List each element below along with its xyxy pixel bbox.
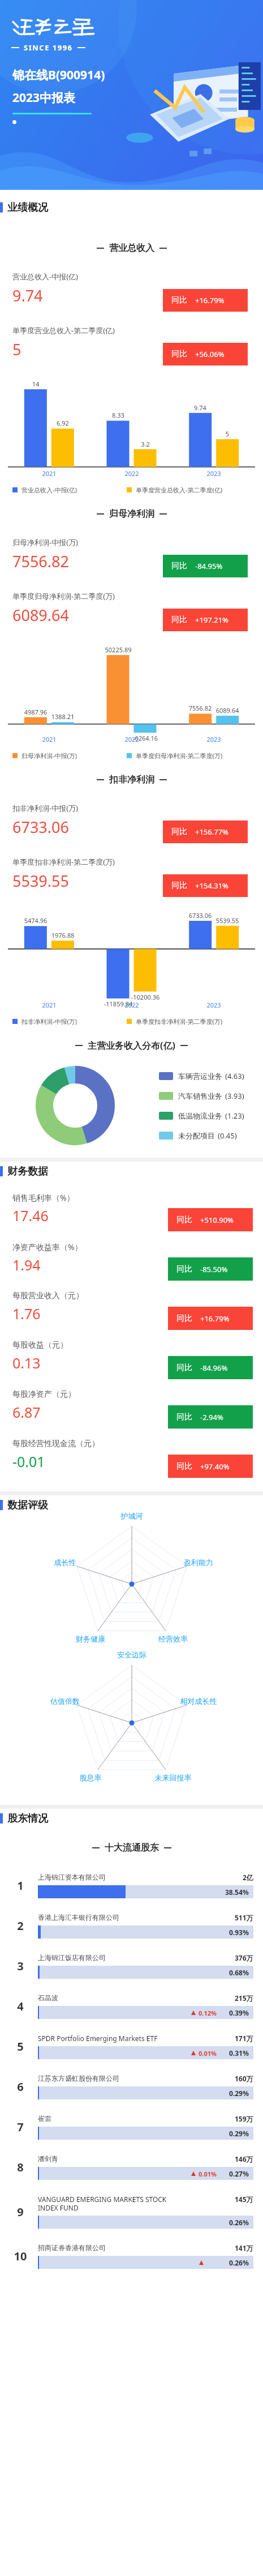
button[interactable]: 同比	[163, 343, 248, 365]
staticText: (0.45)	[218, 1130, 237, 1141]
staticText: 2021	[30, 735, 68, 743]
staticText: 6089.64	[208, 706, 247, 715]
staticText: 215万	[235, 1993, 253, 2003]
staticText: 锦在线B(900914)	[12, 67, 105, 83]
staticText: 主营业务收入分布(亿)	[88, 1039, 175, 1052]
staticText: 5539.55	[208, 916, 247, 925]
staticText: 单季度归母净利润-第二季度(万)	[12, 591, 115, 601]
staticText: 0.01%	[199, 2049, 217, 2058]
staticText: -85.50%	[200, 1264, 228, 1274]
staticText: 171万	[235, 2034, 253, 2043]
staticText: 2023	[195, 469, 233, 478]
staticText: 单季度营业总收入-第二季度(亿)	[12, 325, 115, 335]
staticText: 8	[5, 2160, 36, 2175]
staticText: -2.94%	[200, 1412, 223, 1422]
staticText: VANGUARD EMERGING MARKETS STOCK INDEX FU…	[38, 2195, 235, 2212]
staticText: 6733.06	[181, 911, 219, 920]
staticText: 营业总收入	[109, 243, 154, 254]
staticText: +510.90%	[200, 1215, 234, 1225]
staticText: +154.31%	[195, 881, 228, 891]
staticText: 0.39%	[229, 2008, 249, 2017]
button[interactable]: 6	[0, 2067, 263, 2107]
button[interactable]: 数据评级	[0, 1495, 263, 1515]
staticText: 10	[5, 2248, 36, 2264]
button[interactable]: 业绩概况	[0, 198, 263, 217]
staticText: 净资产收益率（%）	[12, 1242, 83, 1252]
button[interactable]: 同比	[163, 821, 248, 843]
button[interactable]: 同比	[168, 1356, 253, 1379]
staticText: 安全边际	[101, 1650, 163, 1659]
staticText: 0.01%	[199, 2170, 217, 2178]
button[interactable]: 财务数据	[0, 1162, 263, 1181]
staticText: 同比	[171, 295, 187, 305]
staticText: 单季度扣非净利润-第二季度(万)	[12, 857, 115, 867]
button[interactable]: 7	[0, 2107, 263, 2147]
button[interactable]: 同比	[168, 1208, 253, 1231]
staticText: 财务健康	[59, 1634, 122, 1643]
staticText: 崔雷	[38, 2114, 235, 2123]
button[interactable]: 同比	[168, 1307, 253, 1330]
staticText: 盈利能力	[167, 1558, 230, 1567]
button[interactable]: 5	[0, 2026, 263, 2067]
button[interactable]: 同比	[168, 1455, 253, 1478]
staticText: 单季度归母净利润-第二季度(万)	[136, 751, 223, 760]
staticText: 数据评级	[7, 1499, 48, 1512]
staticText: 同比	[176, 1313, 192, 1324]
staticText: 7556.82	[12, 551, 69, 572]
button[interactable]: 1	[0, 1865, 263, 1906]
staticText: 0.26%	[229, 2258, 249, 2267]
staticText: 同比	[176, 1264, 192, 1274]
button[interactable]: 10	[0, 2236, 263, 2276]
button[interactable]: 8	[0, 2147, 263, 2187]
staticText: 5539.55	[12, 870, 69, 891]
staticText: 1	[5, 1878, 36, 1893]
button[interactable]: 同比	[168, 1405, 253, 1429]
button[interactable]: 同比	[163, 289, 248, 312]
button[interactable]: 同比	[163, 555, 248, 577]
staticText: -84.95%	[195, 561, 223, 571]
staticText: 成长性	[34, 1558, 96, 1567]
staticText: 石晶波	[38, 1993, 235, 2002]
staticText: 9.74	[12, 285, 43, 306]
button[interactable]: 4	[0, 1986, 263, 2026]
staticText: 6089.64	[12, 605, 69, 626]
staticText: 8.33	[99, 411, 137, 419]
staticText: 9	[5, 2204, 36, 2220]
staticText: 每股收益（元）	[12, 1340, 68, 1350]
button[interactable]: 同比	[163, 609, 248, 631]
staticText: 营业总收入-中报(亿)	[21, 486, 77, 494]
button[interactable]: 同比	[163, 874, 248, 897]
button[interactable]: 3	[0, 1946, 263, 1986]
button[interactable]: 同比	[168, 1257, 253, 1281]
staticText: 2021	[30, 1001, 68, 1009]
staticText: 145万	[235, 2195, 253, 2204]
staticText: -11859.84	[99, 1000, 137, 1008]
button[interactable]: 9	[0, 2187, 263, 2236]
staticText: (1.23)	[225, 1111, 244, 1121]
staticText: 511万	[235, 1913, 253, 1922]
staticText: 1.76	[12, 1304, 41, 1323]
staticText: 7556.82	[181, 704, 219, 712]
staticText: -0.01	[12, 1452, 45, 1471]
staticText: 未来回报率	[142, 1773, 204, 1782]
staticText: 低温物流业务	[178, 1111, 222, 1120]
staticText: 护城河	[101, 1511, 163, 1520]
staticText: 同比	[171, 349, 187, 359]
staticText: 0.12%	[199, 2009, 217, 2017]
staticText: 同比	[176, 1461, 192, 1472]
button[interactable]: 2	[0, 1906, 263, 1946]
staticText: 归母净利润-中报(万)	[21, 751, 77, 760]
staticText: 2023中报表	[12, 90, 76, 106]
staticText: 股东情况	[7, 1812, 48, 1825]
staticText: 香港上海汇丰银行有限公司	[38, 1913, 235, 1922]
staticText: 2023	[195, 1001, 233, 1009]
button[interactable]: 股东情况	[0, 1809, 263, 1828]
staticText: 7	[5, 2119, 36, 2135]
staticText: 0.29%	[229, 2129, 249, 2138]
staticText: +97.40%	[200, 1461, 230, 1472]
staticText: 2022	[113, 1001, 151, 1009]
staticText: 财务数据	[7, 1165, 48, 1178]
staticText: 招商证券香港有限公司	[38, 2243, 235, 2252]
staticText: -84.96%	[200, 1363, 228, 1373]
staticText: 1388.21	[44, 712, 82, 721]
